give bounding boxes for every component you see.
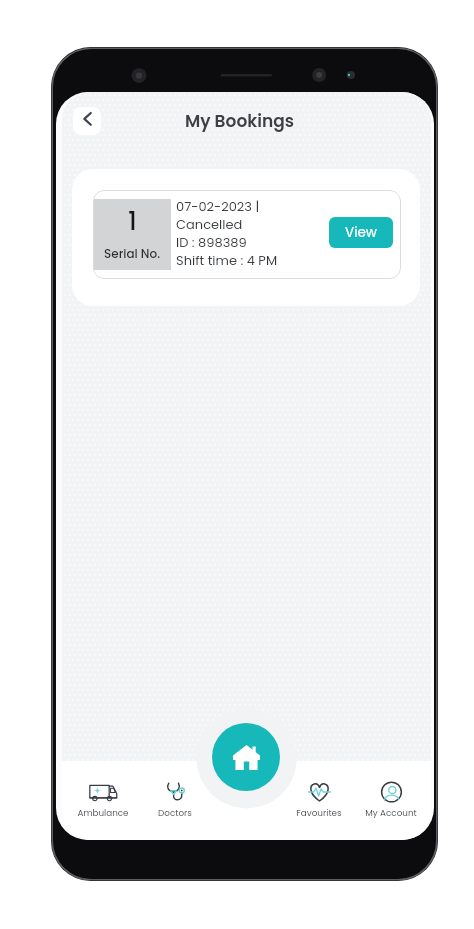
button[interactable]: View bbox=[329, 217, 393, 248]
button[interactable]: Back bbox=[73, 107, 101, 135]
staticText: ID : 898389 bbox=[176, 233, 247, 251]
staticText: View bbox=[345, 223, 377, 242]
staticText: Favourites bbox=[296, 807, 342, 819]
staticText: 07-02-2023 | bbox=[176, 197, 260, 215]
staticText: Shift time : 4 PM bbox=[176, 251, 278, 269]
staticText: 1 bbox=[128, 204, 137, 239]
button[interactable]: Ambulance bbox=[66, 761, 139, 840]
button[interactable]: 1 bbox=[93, 190, 401, 279]
button[interactable]: Home bbox=[212, 723, 280, 791]
staticText: Ambulance bbox=[77, 807, 129, 819]
button[interactable]: Doctors bbox=[139, 761, 211, 840]
staticText: Doctors bbox=[158, 807, 192, 819]
staticText: Cancelled bbox=[176, 215, 243, 233]
staticText: My Account bbox=[365, 807, 417, 819]
button[interactable]: My Account bbox=[355, 761, 427, 840]
staticText: My Bookings bbox=[185, 109, 294, 133]
staticText: Serial No. bbox=[104, 245, 161, 262]
button[interactable]: Favourites bbox=[283, 761, 355, 840]
